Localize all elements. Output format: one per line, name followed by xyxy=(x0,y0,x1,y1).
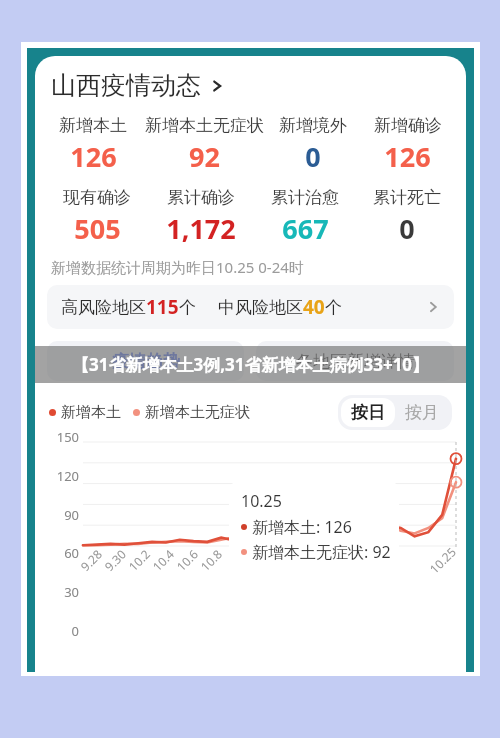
staticText: 9.28 xyxy=(77,546,105,574)
staticText: 新增本土: 126 xyxy=(252,516,352,538)
button[interactable]: 各地区新增详情 xyxy=(256,341,454,381)
staticText: 0 xyxy=(305,138,321,175)
staticText: 150 xyxy=(56,428,79,446)
staticText: 505 xyxy=(74,210,121,247)
staticText: 115 xyxy=(146,294,179,320)
staticText: 40 xyxy=(303,294,325,320)
staticText: 山西疫情动态 xyxy=(51,70,201,101)
staticText: 【31省新增本土3例,31省新增本土病例33+10】 xyxy=(72,353,430,376)
staticText: 新增本土 xyxy=(61,403,121,422)
staticText: 120 xyxy=(56,467,79,485)
staticText: 累计治愈 xyxy=(271,187,339,208)
staticText: 0 xyxy=(399,210,415,247)
staticText: 90 xyxy=(64,506,79,524)
staticText: 各地区新增详情 xyxy=(296,351,415,372)
button[interactable]: 按月 xyxy=(395,398,449,427)
staticText: 126 xyxy=(384,138,431,175)
staticText: 个 xyxy=(325,297,342,318)
staticText: 按月 xyxy=(405,402,439,423)
staticText: 667 xyxy=(282,210,329,247)
staticText: 30 xyxy=(64,583,79,601)
staticText: 新增境外 xyxy=(279,115,347,136)
staticText: 累计确诊 xyxy=(167,187,235,208)
staticText: 新增本土无症状: 92 xyxy=(252,541,391,563)
button[interactable]: 疫情趋势 xyxy=(47,341,244,381)
staticText: 中风险地区 xyxy=(218,297,303,318)
staticText: 10.2 xyxy=(125,546,153,574)
staticText: 126 xyxy=(70,138,117,175)
staticText: 10.25 xyxy=(241,490,282,512)
staticText: 10.25 xyxy=(426,543,459,577)
staticText: 新增数据统计周期为昨日10.25 0-24时 xyxy=(51,257,304,277)
staticText: 新增本土无症状 xyxy=(145,115,264,136)
staticText: 按日 xyxy=(351,402,385,423)
staticText: 疫情趋势 xyxy=(112,351,180,372)
button[interactable]: 按日 xyxy=(341,398,395,427)
staticText: 10.6 xyxy=(173,546,201,574)
staticText: 92 xyxy=(189,138,220,175)
button[interactable]: 山西疫情动态 xyxy=(35,70,466,101)
staticText: 新增确诊 xyxy=(374,115,442,136)
staticText: 10.4 xyxy=(149,546,177,574)
staticText: 9.30 xyxy=(101,546,129,574)
staticText: 60 xyxy=(64,544,79,562)
staticText: 1,172 xyxy=(166,210,236,247)
staticText: 新增本土 xyxy=(59,115,127,136)
staticText: 新增本土无症状 xyxy=(145,403,250,422)
button[interactable]: 高风险地区 xyxy=(47,285,454,329)
staticText: 0 xyxy=(71,622,79,640)
staticText: 个 xyxy=(179,297,196,318)
staticText: 10.8 xyxy=(197,546,225,574)
staticText: 现有确诊 xyxy=(63,187,131,208)
staticText: 高风险地区 xyxy=(61,297,146,318)
staticText: 累计死亡 xyxy=(373,187,441,208)
